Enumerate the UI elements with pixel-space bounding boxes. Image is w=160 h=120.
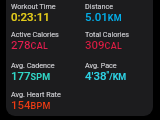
button[interactable]: Avg. Cadence xyxy=(7,58,78,85)
button[interactable]: Active Calories xyxy=(7,27,78,54)
button[interactable]: Avg. Heart Rate xyxy=(7,87,78,114)
staticText: 5.01KM xyxy=(85,10,122,23)
staticText: Workout Time xyxy=(11,2,56,10)
staticText: 0:23:11 xyxy=(11,10,50,23)
staticText: 4'38″/KM xyxy=(85,69,127,82)
button[interactable]: Workout Time xyxy=(7,0,78,26)
staticText: Avg. Pace xyxy=(85,61,117,69)
staticText: Avg. Cadence xyxy=(11,61,55,69)
staticText: 177SPM xyxy=(11,69,51,82)
staticText: Distance xyxy=(85,2,113,10)
staticText: Active Calories xyxy=(11,30,59,38)
staticText: 154BPM xyxy=(11,98,51,111)
staticText: 278CAL xyxy=(11,38,48,51)
staticText: Total Calories xyxy=(85,30,129,38)
button[interactable]: Avg. Pace xyxy=(81,58,152,85)
button[interactable]: Distance xyxy=(81,0,152,26)
button[interactable]: Total Calories xyxy=(81,27,152,54)
staticText: 309CAL xyxy=(85,38,122,51)
staticText: Avg. Heart Rate xyxy=(11,90,61,98)
